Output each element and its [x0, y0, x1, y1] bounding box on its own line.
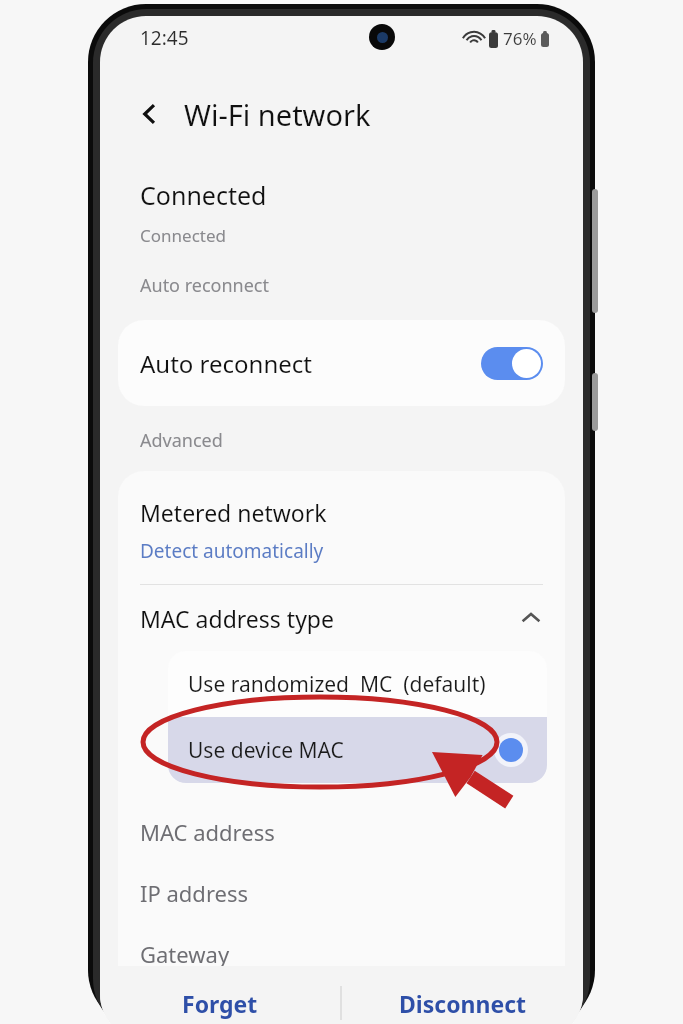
staticText: Auto reconnect: [140, 273, 269, 298]
staticText: Wi-Fi network: [184, 95, 371, 134]
staticText: Use device MAC: [188, 736, 493, 765]
button[interactable]: IP address: [118, 862, 565, 923]
button[interactable]: Disconnect: [342, 966, 583, 1024]
staticText: Connected: [140, 178, 267, 212]
staticText: Disconnect: [399, 988, 526, 1019]
button[interactable]: Use device MAC: [168, 717, 547, 783]
staticText: Metered network: [140, 497, 327, 528]
staticText: Auto reconnect: [140, 347, 312, 380]
staticText: Connected: [140, 224, 226, 247]
button[interactable]: Use randomized MC (default): [168, 651, 547, 717]
button[interactable]: Back: [128, 92, 172, 136]
staticText: Advanced: [140, 428, 223, 453]
staticText: MAC address type: [140, 603, 521, 634]
staticText: 76%: [503, 27, 537, 50]
staticText: MAC address: [140, 817, 275, 847]
button[interactable]: Metered network: [118, 493, 565, 578]
staticText: 12:45: [140, 25, 189, 51]
button[interactable]: Gateway: [118, 923, 565, 984]
staticText: Gateway: [140, 939, 230, 969]
staticText: Use randomized MC (default): [188, 670, 529, 699]
staticText: Detect automatically: [140, 538, 324, 564]
button[interactable]: MAC address: [118, 801, 565, 862]
button[interactable]: Auto reconnect: [118, 320, 565, 406]
staticText: Forget: [182, 988, 258, 1019]
button[interactable]: MAC address type: [118, 585, 565, 651]
staticText: IP address: [140, 878, 249, 908]
button[interactable]: Forget: [100, 966, 340, 1024]
